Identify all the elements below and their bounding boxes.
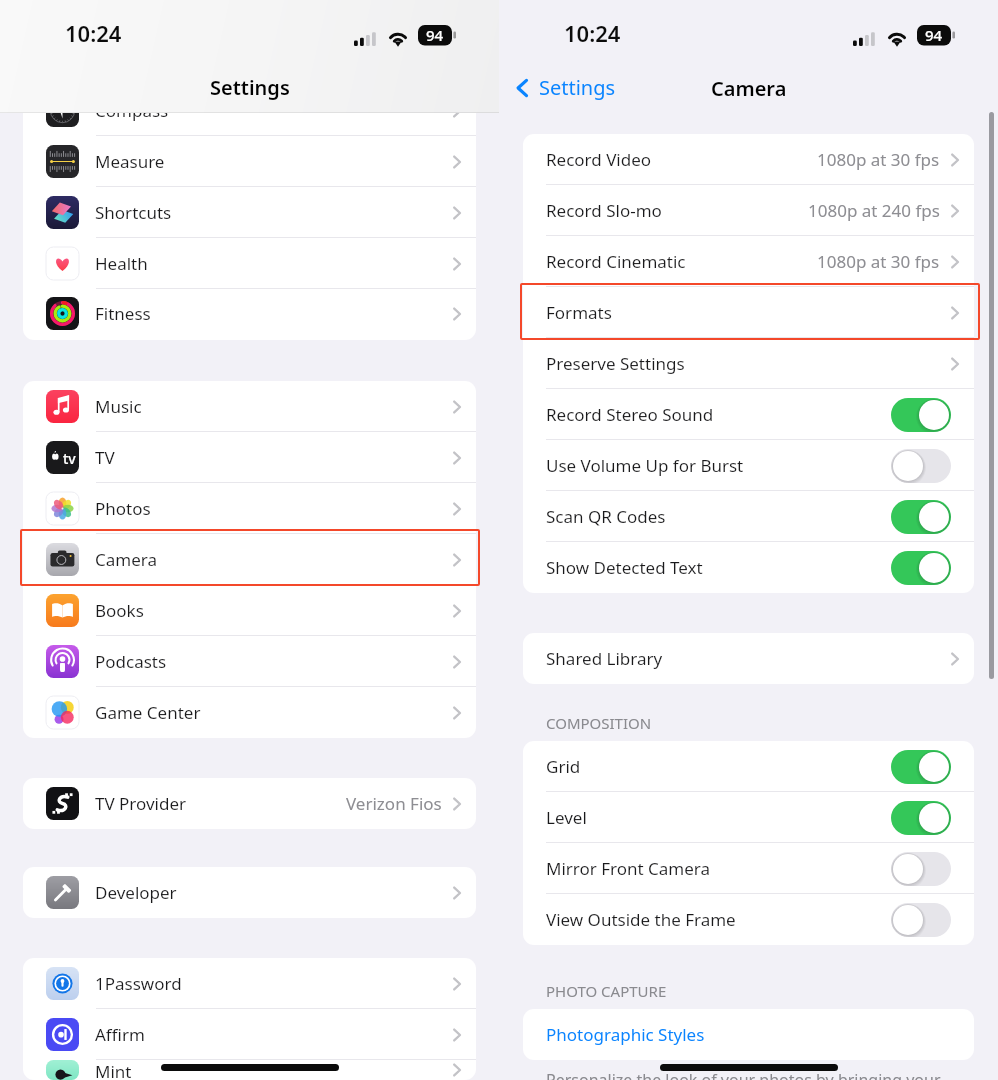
button[interactable]: Photographic Styles [523,1009,974,1060]
staticText: Record Video [546,148,652,171]
button[interactable]: Switch on [891,801,951,835]
button[interactable]: Switch off [891,852,951,886]
staticText: Camera [95,548,157,571]
staticText: Record Slo-mo [546,199,662,222]
button[interactable]: Mirror Front Camera [523,843,974,894]
button[interactable]: Podcasts [23,636,476,687]
button[interactable]: TV Provider [23,778,476,829]
button[interactable]: Switch off [891,449,951,483]
staticText: Formats [546,301,612,324]
button[interactable]: Scan QR Codes [523,491,974,542]
button[interactable]: Record Cinematic [523,236,974,287]
staticText: Mirror Front Camera [546,857,711,880]
staticText: Books [95,599,144,622]
staticText: Camera [711,75,787,102]
staticText: tv [63,449,76,468]
staticText: COMPOSITION [546,713,652,733]
staticText: Settings [539,74,616,101]
button[interactable]: Record Slo-mo [523,185,974,236]
staticText: Preserve Settings [546,352,685,375]
staticText: Music [95,395,142,418]
button[interactable]: Shortcuts [23,187,476,238]
staticText: Developer [95,881,177,904]
button[interactable]: Switch on [891,551,951,585]
staticText: TV [95,446,115,469]
staticText: 94 [426,25,444,45]
button[interactable]: Music [23,381,476,432]
staticText: Health [95,252,148,275]
button[interactable]: Switch on [891,500,951,534]
staticText: Verizon Fios [346,792,442,815]
staticText: Photos [95,497,151,520]
staticText: Show Detected Text [546,556,703,579]
button[interactable]: Use Volume Up for Burst [523,440,974,491]
staticText: Personalize the look of your photos by b… [546,1069,941,1080]
staticText: 1080p at 30 fps [817,250,940,273]
button[interactable]: Switch off [891,903,951,937]
staticText: Shared Library [546,647,663,670]
button[interactable]: Shared Library [523,633,974,684]
staticText: TV Provider [95,792,187,815]
staticText: 1080p at 30 fps [817,148,940,171]
staticText: 10:24 [564,18,621,48]
staticText: View Outside the Frame [546,908,736,931]
button[interactable]: Developer [23,867,476,918]
staticText: 1Password [95,972,182,995]
staticText: Fitness [95,302,151,325]
staticText: Game Center [95,701,201,724]
button[interactable]: Game Center [23,687,476,738]
button[interactable]: Health [23,238,476,289]
staticText: Mint [95,1060,132,1080]
button[interactable]: tv [23,432,476,483]
staticText: Shortcuts [95,201,172,224]
staticText: 1080p at 240 fps [808,199,940,222]
button[interactable]: Camera [23,534,476,585]
button[interactable]: 1Password [23,958,476,1009]
staticText: Use Volume Up for Burst [546,454,744,477]
staticText: Record Stereo Sound [546,403,714,426]
button[interactable]: Mint [23,1060,476,1080]
button[interactable]: Level [523,792,974,843]
staticText: Record Cinematic [546,250,686,273]
staticText: Podcasts [95,650,167,673]
button[interactable]: Compass [23,113,476,136]
button[interactable]: Books [23,585,476,636]
button[interactable]: Preserve Settings [523,338,974,389]
button[interactable]: Photos [23,483,476,534]
button[interactable]: Show Detected Text [523,542,974,593]
button[interactable]: Back [515,74,616,101]
button[interactable]: Record Video [523,134,974,185]
button[interactable]: Grid [523,741,974,792]
staticText: Level [546,806,587,829]
staticText: Measure [95,150,165,173]
button[interactable]: Affirm [23,1009,476,1060]
staticText: Compass [95,113,169,122]
staticText: 94 [925,25,943,45]
button[interactable]: Formats [523,287,974,338]
button[interactable]: Measure [23,136,476,187]
staticText: Settings [210,74,290,101]
staticText: Scan QR Codes [546,505,666,528]
staticText: Grid [546,755,581,778]
other: Back [515,75,529,101]
button[interactable]: Fitness [23,288,476,339]
button[interactable]: View Outside the Frame [523,894,974,945]
staticText: PHOTO CAPTURE [546,981,667,1001]
button[interactable]: Switch on [891,398,951,432]
button[interactable]: Record Stereo Sound [523,389,974,440]
staticText: 10:24 [65,18,122,48]
button[interactable]: Switch on [891,750,951,784]
staticText: Photographic Styles [546,1023,705,1046]
staticText: Affirm [95,1023,145,1046]
